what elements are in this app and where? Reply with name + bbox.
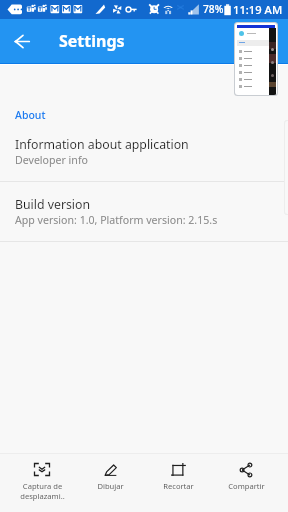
button[interactable]: Captura de desplazami.. [8,454,76,501]
staticText: Information about application [15,136,189,153]
staticText: App version: 1.0, Platform version: 2.15… [15,213,218,227]
button[interactable]: Information about application [0,136,288,167]
button[interactable]: Compartir [212,454,280,491]
button[interactable]: Back [8,27,37,56]
staticText: Captura de desplazami.. [20,481,65,501]
staticText: Developer info [15,153,88,167]
staticText: Compartir [228,481,265,491]
staticText: Settings [59,30,125,52]
button[interactable]: Screenshot preview [234,22,278,96]
staticText: Build version [15,196,91,213]
button[interactable]: Dibujar [76,454,144,491]
staticText: 78% [203,2,224,16]
staticText: 11:19 AM [233,2,283,17]
button[interactable]: Recortar [144,454,212,491]
staticText: Dibujar [97,481,124,491]
staticText: About [15,108,46,122]
button[interactable]: Build version [0,196,288,227]
staticText: Recortar [163,481,194,491]
